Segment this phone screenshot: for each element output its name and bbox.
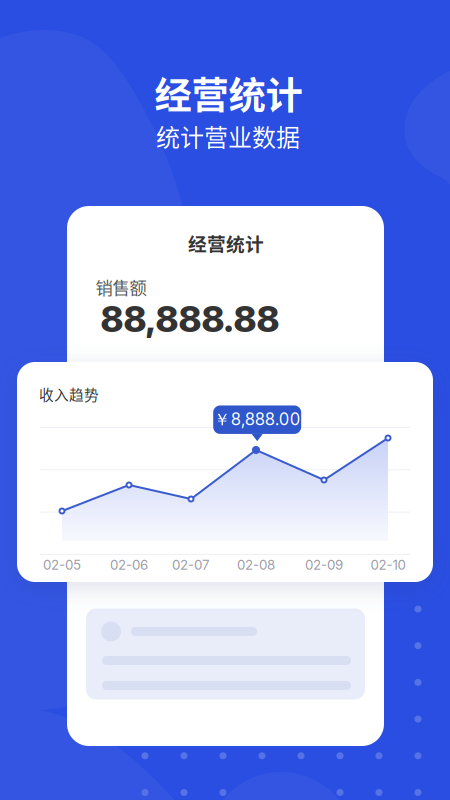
staticText: 收入趋势 [39,383,99,405]
button[interactable]: 经营统计 [67,206,384,746]
button[interactable]: 收入趋势 [17,362,433,582]
staticText: 02-05 [43,557,81,573]
staticText: ￥8,888.00 [214,409,301,430]
staticText: 02-09 [305,557,343,573]
staticText: 经营统计 [188,229,264,256]
staticText: 经营统计 [154,66,302,120]
staticText: 02-06 [110,557,148,573]
staticText: 销售额 [95,274,146,300]
staticText: 02-08 [237,557,275,573]
staticText: 统计营业数据 [156,119,300,153]
staticText: 02-07 [172,557,210,573]
staticText: 88,888.88 [100,297,279,341]
staticText: 02-10 [370,557,405,573]
